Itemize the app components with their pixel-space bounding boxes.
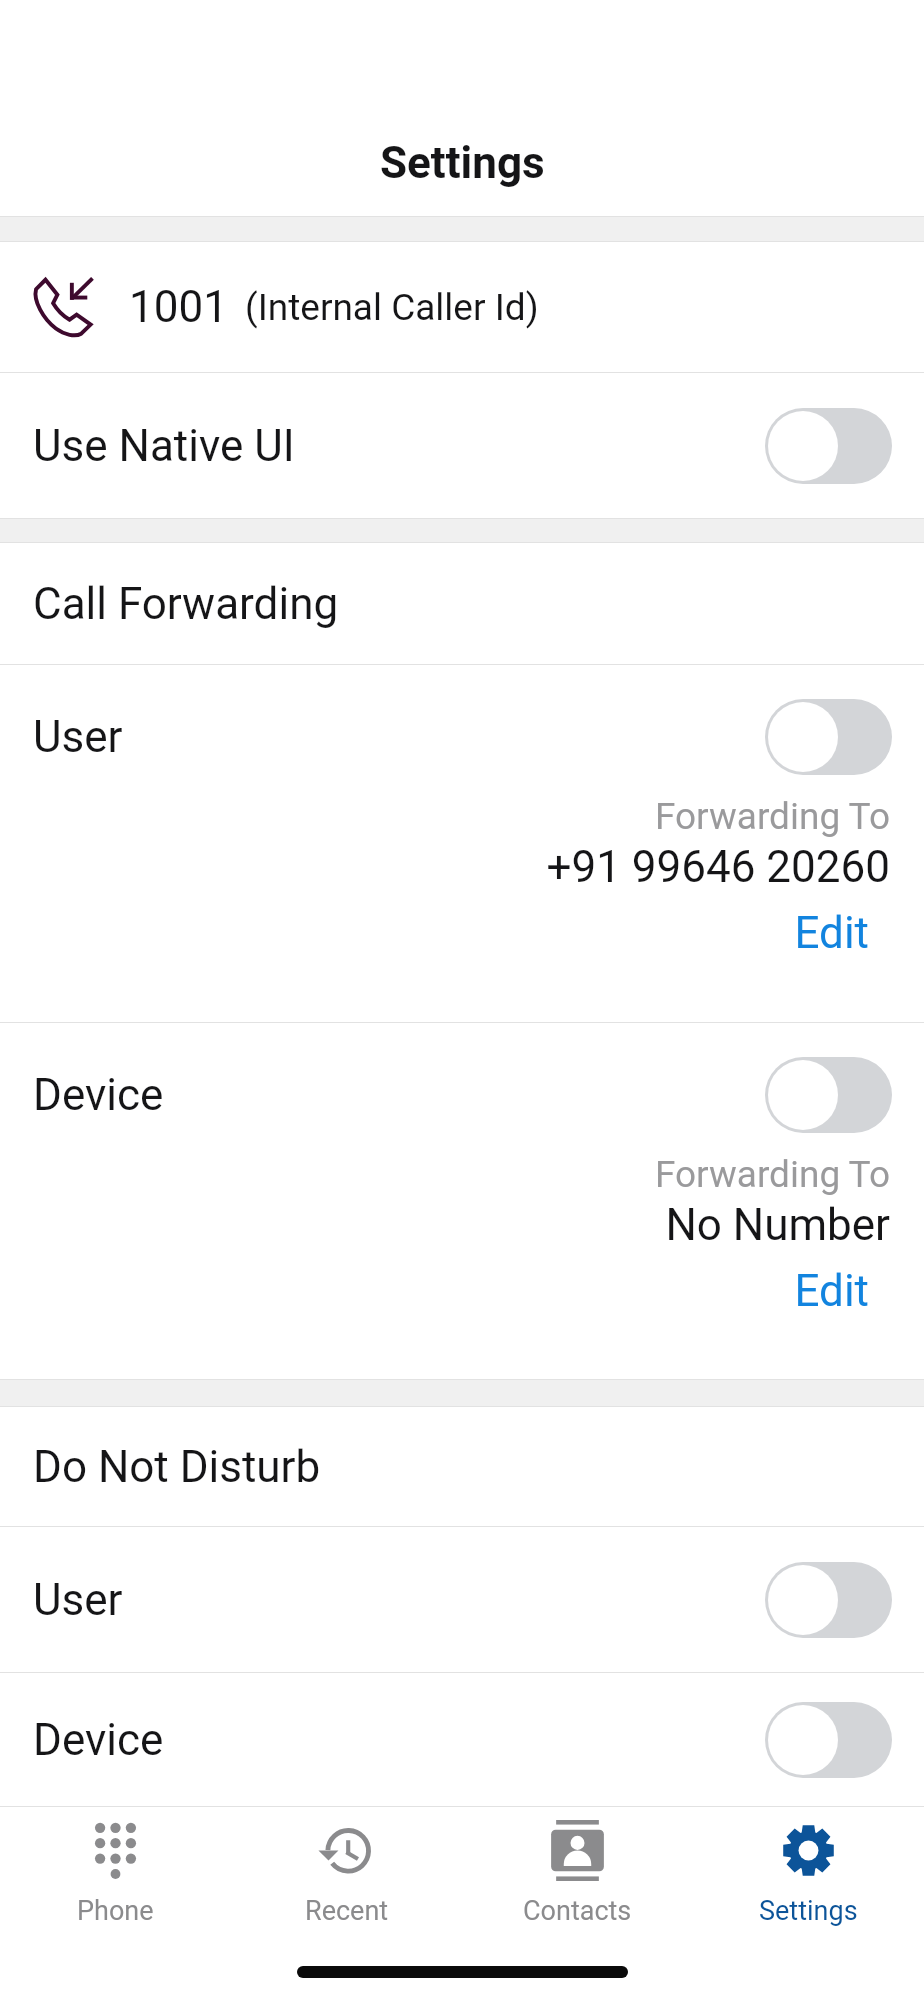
staticText: Phone <box>77 1895 154 1927</box>
staticText: Settings <box>380 137 545 189</box>
button[interactable]: Phone keypad <box>0 1807 231 1927</box>
button[interactable]: 1001 <box>0 242 924 372</box>
staticText: 1001 <box>129 281 228 333</box>
button[interactable]: Toggle Use Native UI <box>765 408 892 484</box>
staticText: Do Not Disturb <box>33 1441 321 1493</box>
button[interactable]: User <box>0 1527 924 1672</box>
button[interactable]: Contacts <box>462 1807 693 1927</box>
button[interactable]: Device <box>0 1673 924 1806</box>
staticText: Use Native UI <box>33 420 295 472</box>
button[interactable]: Use Native UI <box>0 373 924 518</box>
button[interactable]: Toggle Device <box>765 1702 892 1778</box>
staticText: Contacts <box>523 1895 632 1927</box>
staticText: (Internal Caller Id) <box>245 286 539 329</box>
staticText: Call Forwarding <box>33 578 339 630</box>
staticText: User <box>33 711 123 763</box>
button[interactable]: Toggle User <box>765 699 892 775</box>
staticText: Device <box>33 1069 164 1121</box>
staticText: User <box>33 1574 123 1626</box>
button[interactable]: Edit <box>0 1023 924 1075</box>
staticText: Forwarding To <box>0 1153 890 1196</box>
staticText: No Number <box>0 1199 890 1251</box>
staticText: Forwarding To <box>0 795 890 838</box>
button[interactable]: Settings <box>693 1807 924 1927</box>
staticText: +91 99646 20260 <box>0 841 890 893</box>
button[interactable]: Toggle Device <box>765 1057 892 1133</box>
staticText: Device <box>33 1714 164 1766</box>
staticText: Recent <box>305 1895 389 1927</box>
staticText: Settings <box>759 1895 858 1927</box>
button[interactable]: User <box>0 665 924 1022</box>
button[interactable]: Do Not Disturb <box>0 1407 924 1526</box>
button[interactable]: Edit <box>0 665 924 717</box>
button[interactable]: Toggle User <box>765 1562 892 1638</box>
button[interactable]: Device <box>0 1023 924 1379</box>
button[interactable]: Call Forwarding <box>0 543 924 664</box>
button[interactable]: Recent calls <box>231 1807 462 1927</box>
